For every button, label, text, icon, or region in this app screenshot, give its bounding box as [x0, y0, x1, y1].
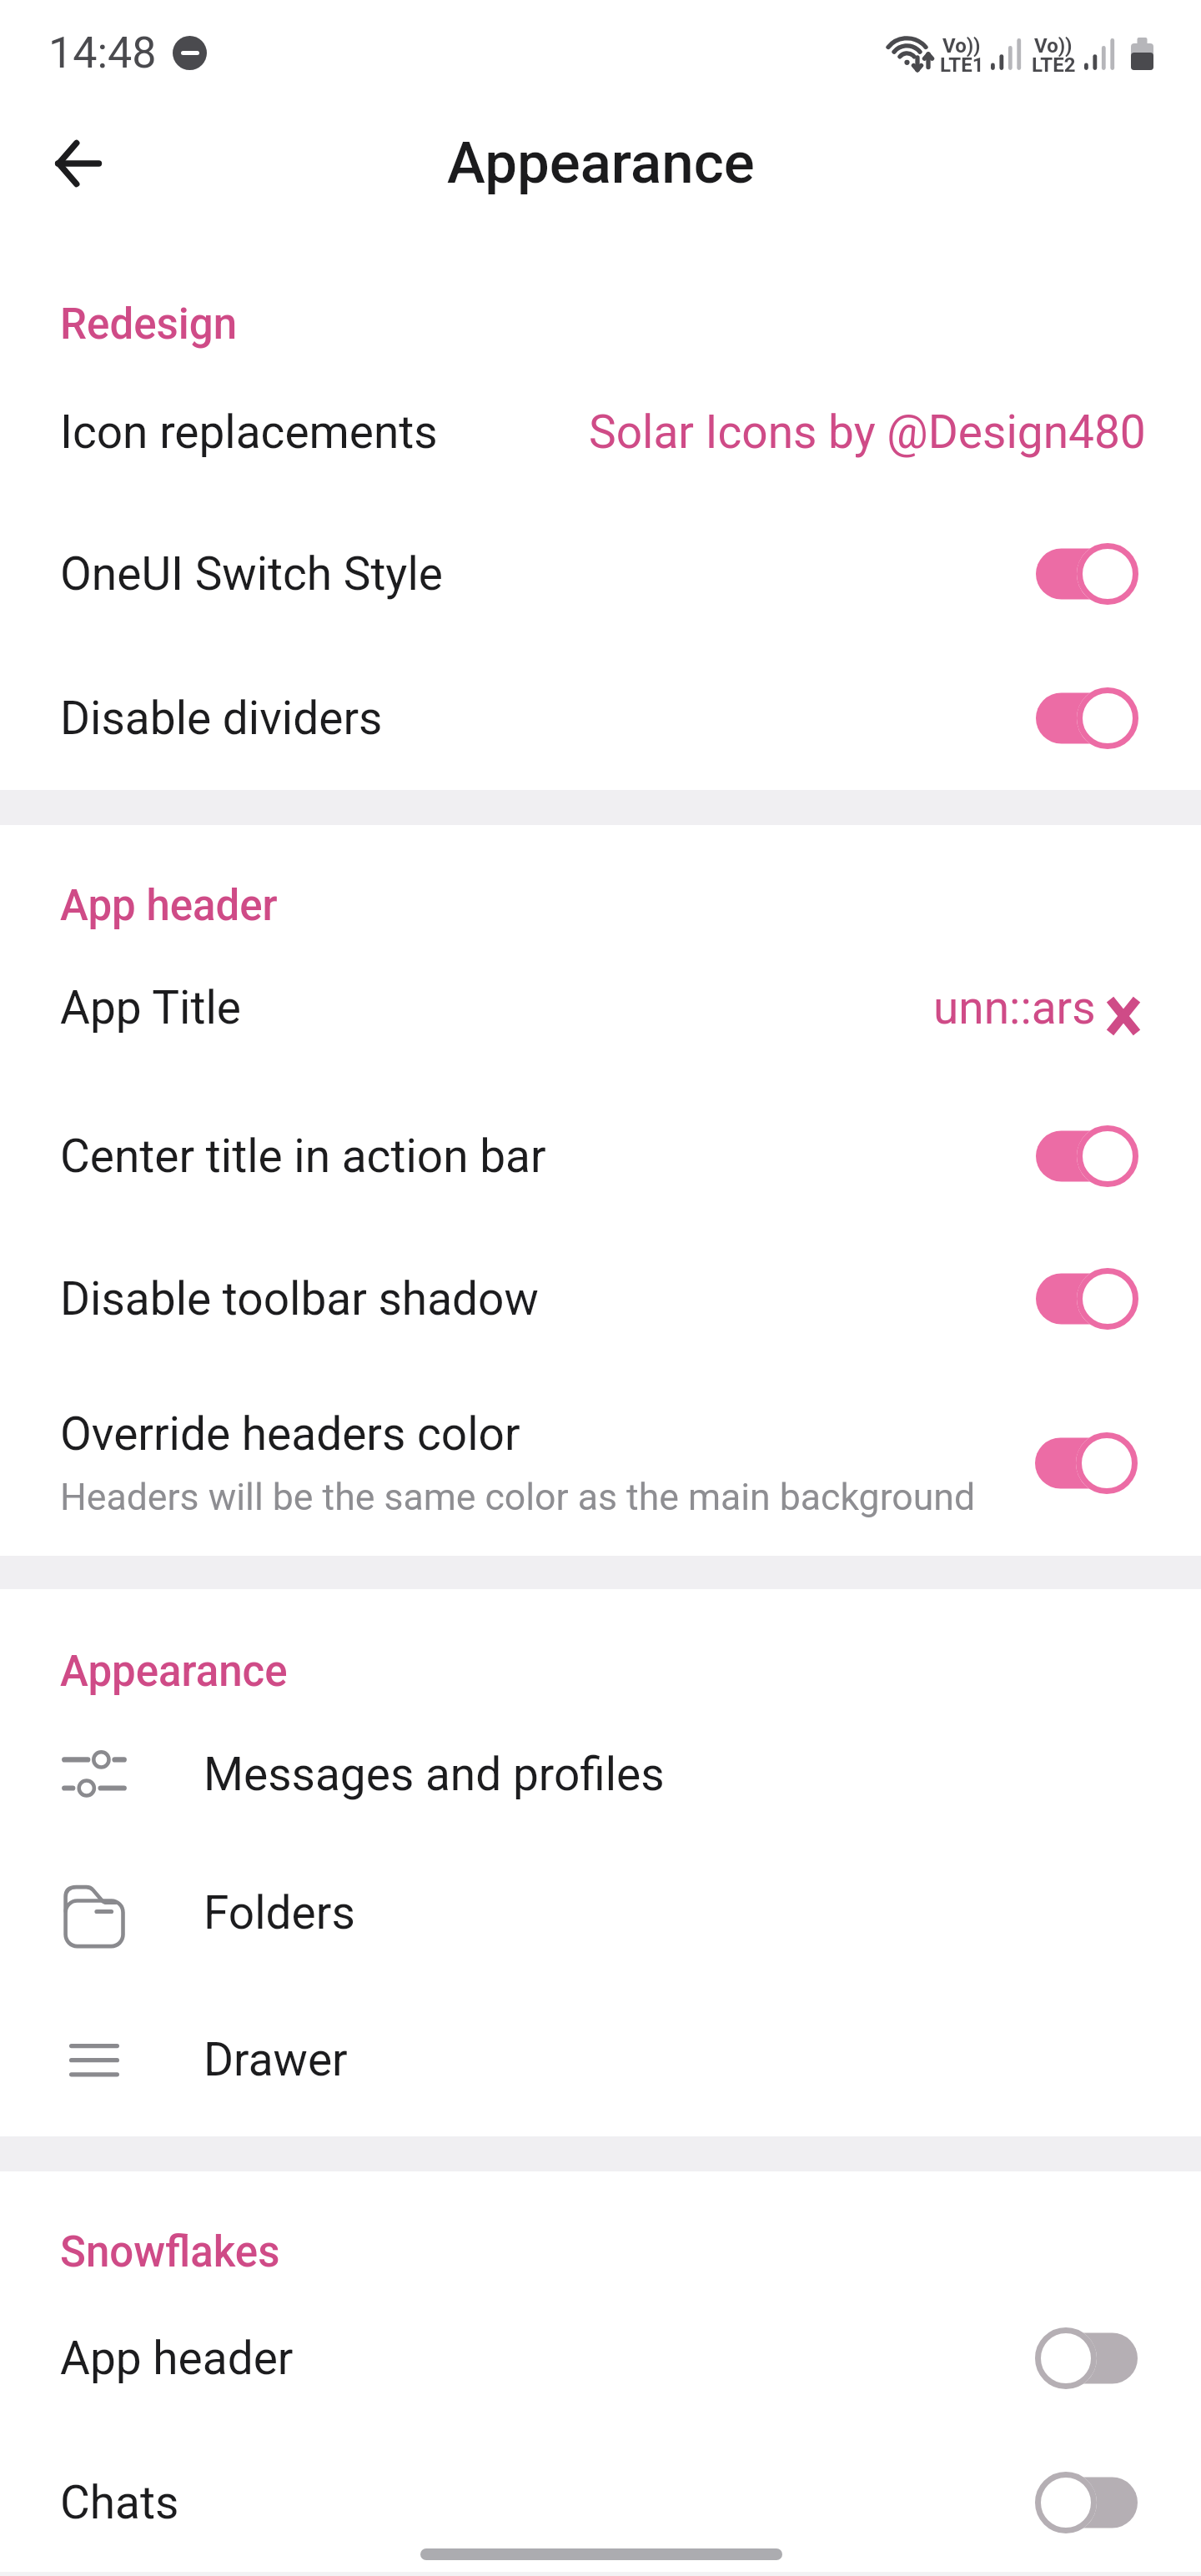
button[interactable]: Messages and profiles — [0, 1703, 1201, 1844]
staticText: Appearance — [60, 1647, 288, 1697]
button[interactable]: App header — [0, 2287, 1201, 2429]
staticText: unn::ars — [933, 981, 1096, 1034]
button[interactable]: Center title in action bar — [0, 1085, 1201, 1227]
staticText: Chats — [60, 2476, 179, 2529]
button[interactable]: Icon replacements — [0, 361, 1201, 503]
staticText: Headers will be the same color as the ma… — [60, 1476, 976, 1519]
staticText: Solar Icons by @Design480 — [589, 405, 1146, 459]
button[interactable]: OneUI Switch Style — [0, 503, 1201, 645]
staticText: Vo)) — [1034, 34, 1073, 58]
staticText: Disable toolbar shadow — [60, 1272, 539, 1326]
button[interactable]: Folders — [0, 1841, 1201, 1983]
staticText: Vo)) — [942, 34, 981, 58]
button[interactable]: Drawer — [0, 1988, 1201, 2130]
staticText: Disable dividers — [60, 692, 383, 745]
staticText: 14:48 — [48, 28, 157, 78]
staticText: App header — [60, 881, 278, 931]
button[interactable]: Disable toolbar shadow — [0, 1228, 1201, 1370]
staticText: Redesign — [60, 299, 238, 350]
staticText: Snowflakes — [60, 2227, 280, 2277]
staticText: Drawer — [204, 2033, 348, 2086]
staticText: App header — [60, 2332, 294, 2385]
staticText: OneUI Switch Style — [60, 547, 443, 601]
staticText: Folders — [204, 1886, 355, 1940]
staticText: Center title in action bar — [60, 1130, 546, 1183]
staticText: LTE1 — [940, 53, 984, 77]
button[interactable]: Disable dividers — [0, 647, 1201, 789]
staticText: Override headers color — [60, 1407, 520, 1461]
staticText: Appearance — [447, 129, 755, 197]
button[interactable]: Override headers color — [0, 1362, 1201, 1571]
staticText: Icon replacements — [60, 405, 438, 459]
staticText: Messages and profiles — [204, 1748, 665, 1801]
staticText: App Title — [60, 981, 241, 1034]
button[interactable]: App Title — [0, 936, 1201, 1078]
staticText: LTE2 — [1032, 53, 1076, 77]
button[interactable]: Chats — [0, 2432, 1201, 2573]
button[interactable]: Back — [23, 108, 133, 218]
